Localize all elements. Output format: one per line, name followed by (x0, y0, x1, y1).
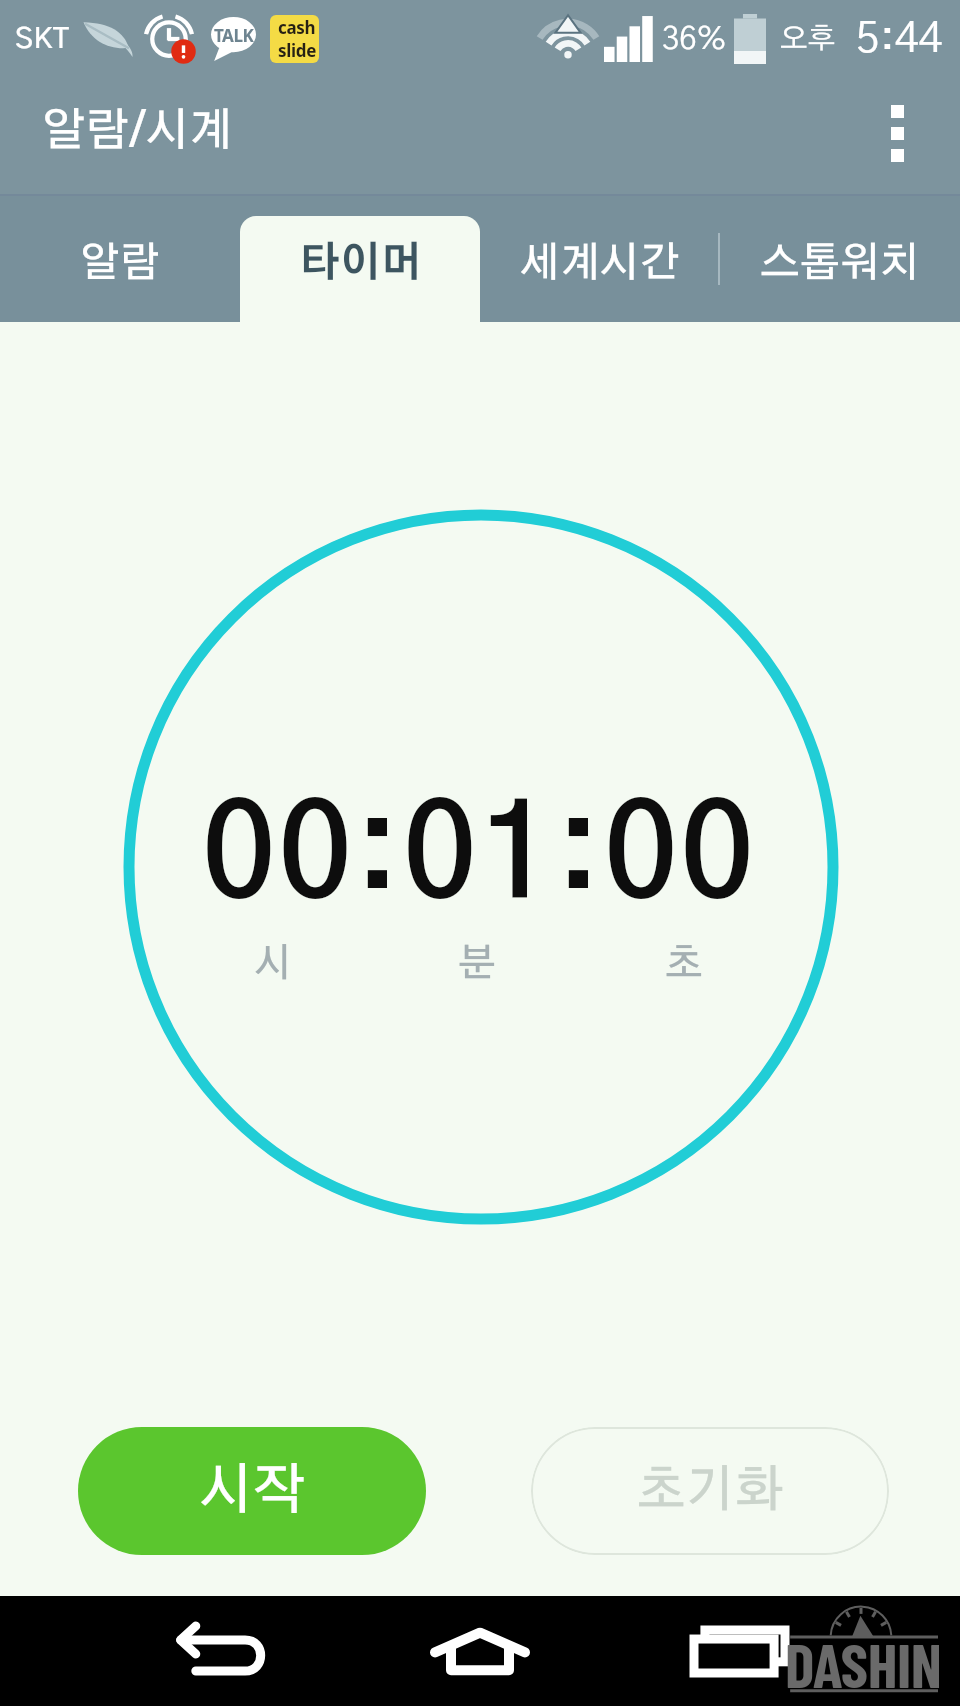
staticText: cash (278, 16, 316, 39)
button[interactable]: 스톱워치 (720, 196, 960, 322)
staticText: SKT (15, 25, 70, 54)
button[interactable]: Back (0, 1596, 320, 1706)
staticText: 초기화 (637, 1466, 783, 1516)
staticText: 00:01:00 (202, 795, 757, 923)
staticText: TALK (214, 24, 254, 47)
staticText: 36% (662, 24, 727, 55)
button[interactable]: Recent apps (640, 1596, 960, 1706)
staticText: DASHIN (785, 1626, 939, 1700)
staticText: 분 (458, 945, 496, 984)
staticText: 알람/시계 (42, 109, 234, 154)
staticText: 시작 (199, 1464, 306, 1519)
staticText: 타이머 (299, 243, 422, 284)
button[interactable]: Home (320, 1596, 640, 1706)
staticText: 초 (665, 945, 703, 984)
button[interactable]: 세계시간 (480, 196, 720, 322)
staticText: 스톱워치 (760, 243, 920, 284)
staticText: 오후 (780, 25, 836, 54)
staticText: 시 (254, 945, 292, 984)
staticText: 알람 (80, 243, 160, 284)
staticText: 5:44 (856, 18, 943, 61)
button[interactable]: 시작 (78, 1427, 426, 1555)
button[interactable]: 타이머 (240, 196, 480, 322)
button[interactable]: 초기화 (531, 1427, 889, 1555)
staticText: 세계시간 (520, 243, 680, 284)
button[interactable]: More options (864, 78, 960, 196)
staticText: slide (278, 39, 317, 62)
button[interactable]: 알람 (0, 196, 240, 322)
